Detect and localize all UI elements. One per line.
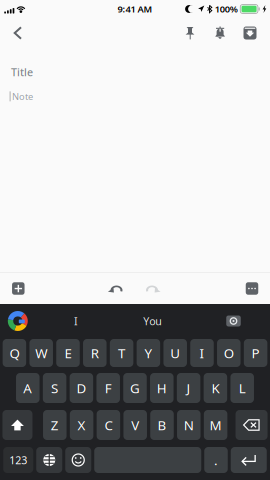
button[interactable]: P <box>244 339 267 367</box>
button[interactable]: Undo <box>98 273 134 304</box>
staticText: Note <box>12 90 33 103</box>
staticText: Y <box>144 344 152 362</box>
button[interactable]: C <box>97 410 120 440</box>
staticText: O <box>224 344 234 362</box>
button[interactable]: K <box>204 373 227 403</box>
button[interactable]: Redo <box>134 273 170 304</box>
button[interactable]: Y <box>137 339 160 367</box>
staticText: T <box>118 344 125 362</box>
button[interactable]: H <box>150 373 174 403</box>
button[interactable]: You <box>119 304 187 338</box>
button[interactable]: T <box>110 339 133 367</box>
button[interactable]: Pin <box>175 18 205 48</box>
staticText: X <box>78 416 86 434</box>
staticText: K <box>211 379 219 397</box>
button[interactable]: Archive <box>235 18 265 48</box>
staticText: Z <box>51 416 59 434</box>
button[interactable]: B <box>150 410 174 440</box>
button[interactable]: G <box>123 373 147 403</box>
button[interactable]: E <box>56 339 80 367</box>
staticText: A <box>23 379 32 397</box>
staticText: R <box>91 344 99 362</box>
button[interactable]: W <box>29 339 53 367</box>
button[interactable]: I <box>42 304 110 338</box>
button[interactable]: Back <box>0 18 36 48</box>
staticText: D <box>76 379 86 397</box>
button[interactable]: Google Lens <box>216 304 251 338</box>
button[interactable]: J <box>177 373 200 403</box>
staticText: I <box>199 344 204 362</box>
button[interactable]: N <box>177 410 200 440</box>
button[interactable]: 123 <box>3 447 33 473</box>
staticText: You <box>143 314 162 328</box>
staticText: E <box>64 344 71 362</box>
staticText: G <box>130 379 140 397</box>
button[interactable]: Google Assistant <box>0 304 36 338</box>
button[interactable]: R <box>83 339 107 367</box>
staticText: M <box>210 416 222 434</box>
button[interactable]: Return <box>231 447 267 473</box>
staticText: H <box>157 379 167 397</box>
staticText: W <box>35 344 47 362</box>
button[interactable]: Add <box>0 273 36 304</box>
button[interactable]: O <box>217 339 241 367</box>
button[interactable]: I <box>190 339 214 367</box>
staticText: . <box>214 451 218 469</box>
staticText: 9:41 AM <box>117 3 152 15</box>
button[interactable]: Emoji <box>65 447 91 473</box>
button[interactable]: M <box>204 410 227 440</box>
staticText: Title <box>11 65 33 79</box>
button[interactable]: Reminder <box>205 18 235 48</box>
button[interactable]: More options <box>234 273 270 304</box>
staticText: P <box>252 344 260 362</box>
button[interactable]: Switch keyboard <box>36 447 62 473</box>
staticText: J <box>187 379 191 397</box>
staticText: S <box>51 379 58 397</box>
staticText: 123 <box>9 453 27 467</box>
button[interactable]: X <box>70 410 93 440</box>
button[interactable]: L <box>230 373 254 403</box>
button[interactable]: F <box>96 373 120 403</box>
staticText: L <box>239 379 246 397</box>
button[interactable]: A <box>16 373 39 403</box>
staticText: B <box>157 416 166 434</box>
staticText: V <box>131 416 139 434</box>
staticText: N <box>184 416 194 434</box>
staticText: 100% <box>215 3 238 15</box>
staticText: I <box>74 314 78 328</box>
button[interactable]: Z <box>43 410 66 440</box>
button[interactable]: S <box>43 373 66 403</box>
button[interactable]: . <box>204 447 228 473</box>
staticText: F <box>105 379 112 397</box>
button[interactable]: V <box>123 410 147 440</box>
button[interactable]: Q <box>3 339 26 367</box>
button[interactable]: D <box>70 373 93 403</box>
staticText: C <box>104 416 112 434</box>
staticText: Q <box>9 344 19 362</box>
button[interactable]: Shift <box>2 410 32 440</box>
staticText: U <box>170 344 180 362</box>
button[interactable]: U <box>163 339 187 367</box>
button[interactable]: Backspace <box>235 410 267 440</box>
